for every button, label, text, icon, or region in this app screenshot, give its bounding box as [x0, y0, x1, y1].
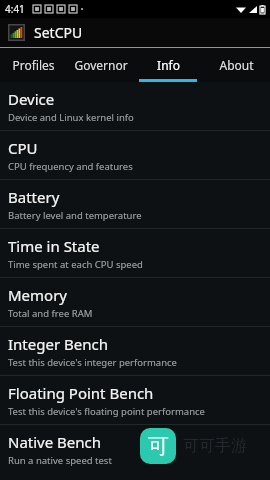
button[interactable]: Governor — [67, 48, 134, 82]
button[interactable]: Info — [134, 48, 202, 82]
staticText: 4:41 — [5, 2, 25, 16]
button[interactable]: Profiles — [0, 48, 67, 82]
button[interactable]: Battery — [0, 180, 270, 228]
staticText: CPU — [8, 138, 38, 158]
staticText: CPU frequency and features — [8, 160, 133, 173]
other: SetCPU icon — [8, 24, 25, 41]
staticText: Battery — [8, 187, 60, 207]
staticText: About — [219, 57, 254, 73]
button[interactable]: CPU — [0, 131, 270, 179]
staticText: Time spent at each CPU speed — [8, 258, 143, 271]
staticText: Profiles — [12, 57, 55, 73]
staticText: Device and Linux kernel info — [8, 111, 134, 124]
button[interactable]: Native Bench — [0, 425, 270, 473]
button[interactable]: Integer Bench — [0, 327, 270, 375]
button[interactable]: Memory — [0, 278, 270, 326]
staticText: Test this device's integer performance — [8, 356, 177, 369]
staticText: Governor — [74, 57, 128, 73]
staticText: 可可手游 — [183, 436, 247, 456]
button[interactable]: Floating Point Bench — [0, 376, 270, 424]
button[interactable]: Device — [0, 82, 270, 130]
staticText: Memory — [8, 285, 68, 305]
staticText: Info — [157, 57, 180, 73]
staticText: Battery level and temperature — [8, 209, 142, 222]
button[interactable]: Time in State — [0, 229, 270, 277]
staticText: Total and free RAM — [8, 307, 93, 320]
staticText: Test this device's floating point perfor… — [8, 405, 205, 418]
staticText: Run a native speed test — [8, 454, 112, 467]
staticText: Floating Point Bench — [8, 383, 154, 403]
staticText: SetCPU — [34, 23, 83, 42]
staticText: 可 — [148, 433, 169, 459]
staticText: Time in State — [8, 236, 100, 256]
button[interactable]: About — [202, 48, 270, 82]
staticText: Integer Bench — [8, 334, 108, 354]
staticText: Native Bench — [8, 432, 102, 452]
staticText: Device — [8, 89, 55, 109]
